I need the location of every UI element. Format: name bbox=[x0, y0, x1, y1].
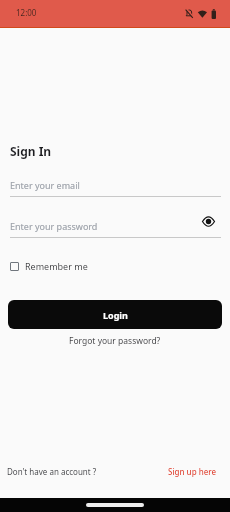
staticText: Enter your password bbox=[10, 220, 98, 232]
staticText: 12:00 bbox=[16, 7, 37, 18]
button[interactable]: Login bbox=[8, 300, 222, 329]
button[interactable]: Forgot your password? bbox=[69, 335, 161, 347]
button[interactable]: Remember me bbox=[10, 260, 88, 272]
staticText: Sign In bbox=[10, 143, 52, 159]
staticText: Enter your email bbox=[10, 179, 80, 191]
staticText: Remember me bbox=[25, 260, 88, 272]
staticText: Don't have an account ? bbox=[7, 466, 97, 477]
staticText: Login bbox=[103, 309, 128, 321]
button[interactable] bbox=[202, 217, 215, 226]
button[interactable]: Sign up here bbox=[168, 466, 217, 477]
